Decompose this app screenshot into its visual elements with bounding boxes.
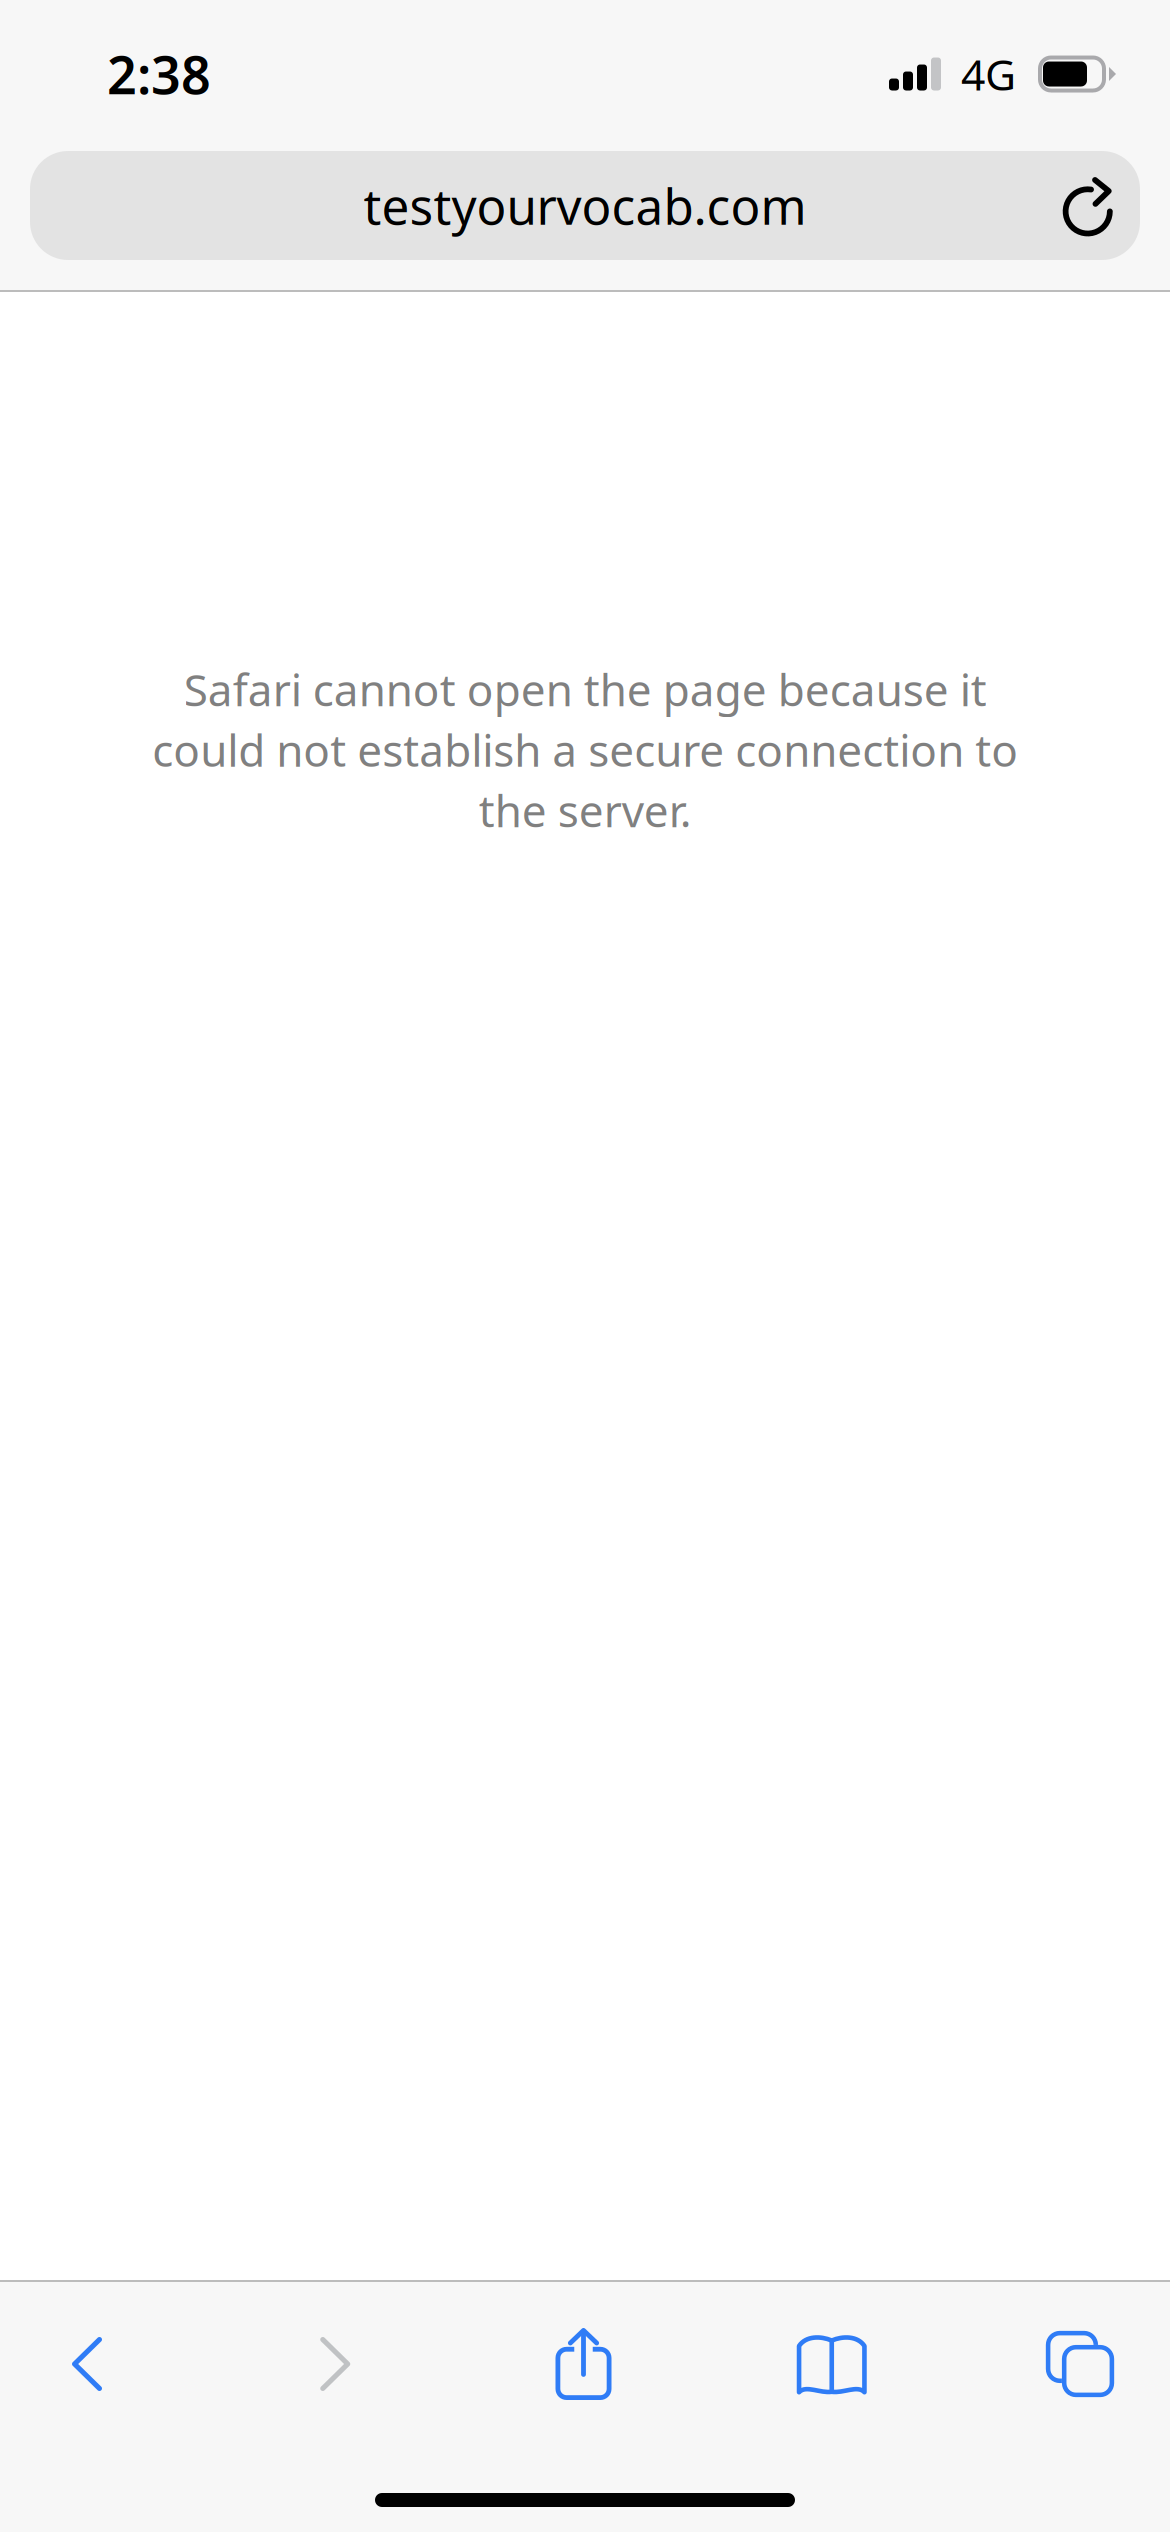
button[interactable]: Tabs <box>994 2308 1166 2420</box>
button[interactable]: Share <box>497 2308 669 2420</box>
button[interactable]: Forward <box>249 2308 421 2420</box>
staticText: testyourvocab.com <box>363 173 806 238</box>
button[interactable]: Bookmarks <box>746 2308 918 2420</box>
button[interactable]: testyourvocab.com <box>0 151 1170 290</box>
staticText: 4G <box>961 46 1016 102</box>
staticText: 2:38 <box>107 39 211 109</box>
staticText: Safari cannot open the page because it c… <box>152 660 1018 839</box>
button[interactable]: Back <box>1 2308 173 2420</box>
